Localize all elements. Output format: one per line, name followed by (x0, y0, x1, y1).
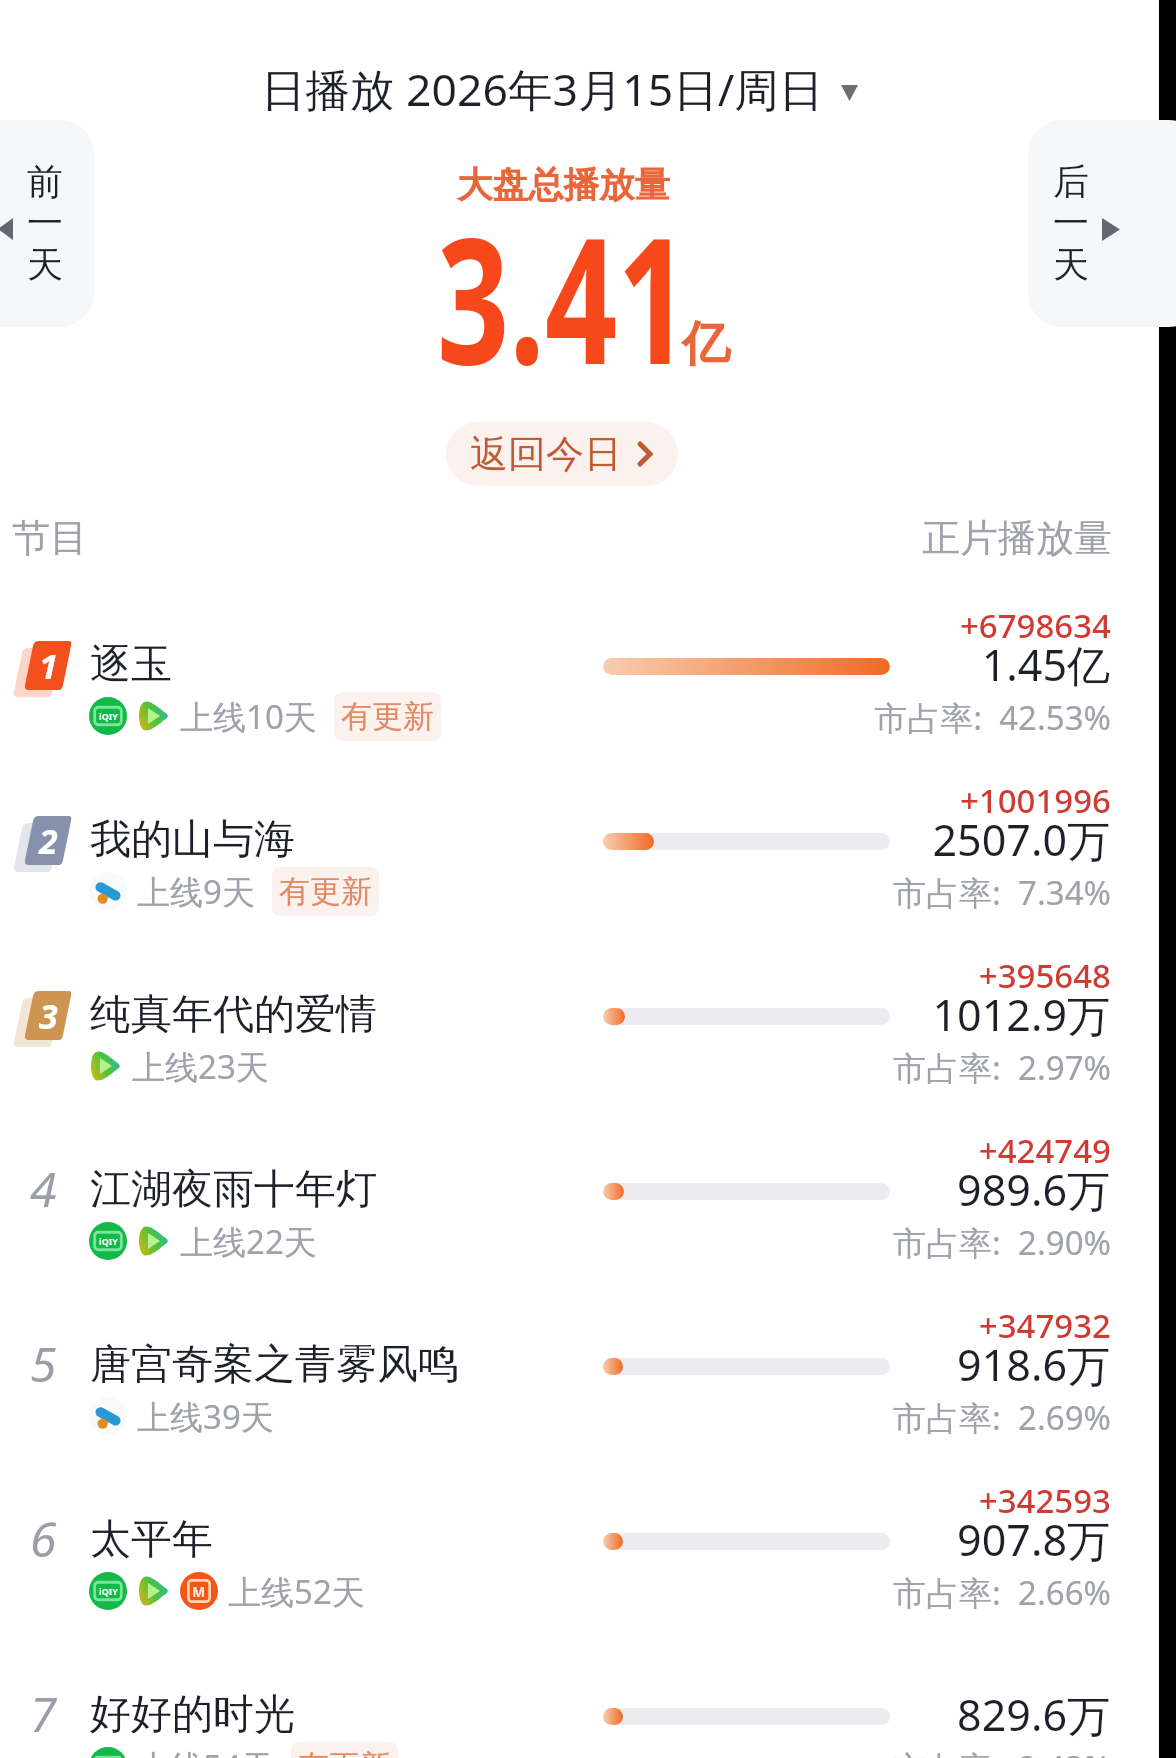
staticText: +347932 (691, 1303, 1111, 1348)
staticText: 1012.9万 (690, 985, 1110, 1044)
staticText: 逐玉 (90, 639, 172, 691)
staticText: 989.6万 (690, 1160, 1110, 1219)
staticText: 日播放 2026年3月15日/周日 (261, 58, 824, 119)
staticText: 市占率: 42.53% (691, 695, 1111, 740)
staticText: 2 (39, 818, 58, 864)
staticText: 3 (39, 993, 58, 1039)
staticText: 江湖夜雨十年灯 (90, 1164, 377, 1216)
staticText: 市占率: 2.97% (691, 1045, 1111, 1090)
button[interactable] (0, 579, 1159, 754)
staticText: 市占率: 2.66% (691, 1570, 1111, 1615)
staticText: iQIY (99, 710, 118, 722)
staticText: 4 (30, 1156, 57, 1221)
staticText: 918.6万 (690, 1335, 1110, 1394)
staticText: 上线54天 (137, 1744, 274, 1758)
staticText: 大盘总播放量 (457, 163, 670, 208)
button[interactable] (0, 754, 1159, 929)
staticText: 有更新 (279, 872, 372, 911)
staticText: 好好的时光 (90, 1689, 295, 1741)
staticText: 3.41 (437, 178, 690, 415)
button[interactable] (0, 929, 1159, 1104)
staticText: 市占率: 2.90% (691, 1220, 1111, 1265)
staticText: 亿 (682, 314, 730, 374)
staticText: 5 (30, 1331, 57, 1396)
staticText: 上线9天 (137, 869, 255, 914)
staticText: 907.8万 (690, 1510, 1110, 1569)
staticText: iQIY (99, 1585, 118, 1597)
staticText: +424749 (691, 1128, 1111, 1173)
staticText: 正片播放量 (692, 514, 1112, 562)
staticText: 有更新 (341, 697, 434, 736)
button[interactable] (0, 1279, 1159, 1454)
button[interactable]: 后一天 (1028, 120, 1176, 327)
staticText: 市占率: 7.34% (691, 870, 1111, 915)
staticText: 6 (30, 1506, 57, 1571)
staticText: 唐宫奇案之青雾风鸣 (90, 1339, 459, 1391)
staticText: 1.45亿 (690, 635, 1110, 694)
button[interactable] (0, 1629, 1159, 1758)
button[interactable] (0, 1454, 1159, 1629)
staticText: 节目 (12, 514, 88, 562)
staticText: 829.6万 (690, 1685, 1110, 1744)
staticText: 返回今日 (470, 430, 622, 478)
button[interactable]: 前一天 (0, 120, 94, 327)
staticText: +1001996 (691, 778, 1111, 823)
staticText: 后 一 天 (1053, 159, 1089, 288)
staticText: 太平年 (90, 1514, 213, 1566)
staticText: M (192, 1582, 206, 1601)
button[interactable]: 返回今日 (446, 422, 678, 486)
staticText: 前 一 天 (27, 159, 63, 288)
staticText: +395648 (691, 953, 1111, 998)
staticText: 7 (30, 1681, 57, 1746)
staticText: 有更新 (298, 1747, 391, 1758)
staticText: 上线22天 (180, 1219, 317, 1264)
staticText: 市占率: 2.69% (691, 1395, 1111, 1440)
staticText: +342593 (691, 1478, 1111, 1523)
staticText: 市占率: 2.43% (691, 1745, 1111, 1758)
staticText: 2507.0万 (690, 810, 1110, 869)
staticText: iQIY (99, 1235, 118, 1247)
staticText: 上线23天 (132, 1044, 269, 1089)
button[interactable]: 日播放 2026年3月15日/周日 (261, 53, 858, 123)
staticText: 1 (39, 643, 58, 689)
staticText: 上线52天 (228, 1569, 365, 1614)
staticText: 上线10天 (180, 694, 317, 739)
staticText: +6798634 (691, 603, 1111, 648)
staticText: 上线39天 (137, 1394, 274, 1439)
staticText: 纯真年代的爱情 (90, 989, 377, 1041)
staticText: 我的山与海 (90, 814, 295, 866)
button[interactable] (0, 1104, 1159, 1279)
